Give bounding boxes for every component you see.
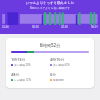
staticText: 6時間52分: [11, 42, 89, 48]
staticText: 4時15分: [50, 57, 65, 62]
staticText: 浅い睡眠 62%: [53, 63, 70, 67]
staticText: 1時13分: [11, 57, 26, 62]
staticText: 22:46: [2, 25, 9, 29]
other: 睡眠ステージグラフ: [0, 12, 100, 25]
staticText: 深い睡眠 20%: [14, 63, 31, 67]
staticText: 06:01: [91, 25, 98, 29]
button[interactable]: 6時間52分: [6, 38, 94, 88]
staticText: 00:30: [32, 25, 39, 29]
button[interactable]: 1時13分: [11, 57, 50, 67]
staticText: 覚醒時間: [53, 78, 64, 81]
button[interactable]: 0分: [50, 72, 89, 81]
staticText: 8時のスコアよりも良い睡眠です: [0, 6, 100, 10]
staticText: いつもよりぐっすり眠れました: [0, 1, 100, 5]
button[interactable]: 48分: [11, 72, 50, 82]
staticText: 0分: [50, 72, 57, 77]
staticText: レム睡眠 12%: [14, 78, 31, 82]
staticText: 02:30: [61, 25, 68, 29]
button[interactable]: 4時15分: [50, 57, 89, 67]
staticText: 48分: [11, 72, 20, 77]
